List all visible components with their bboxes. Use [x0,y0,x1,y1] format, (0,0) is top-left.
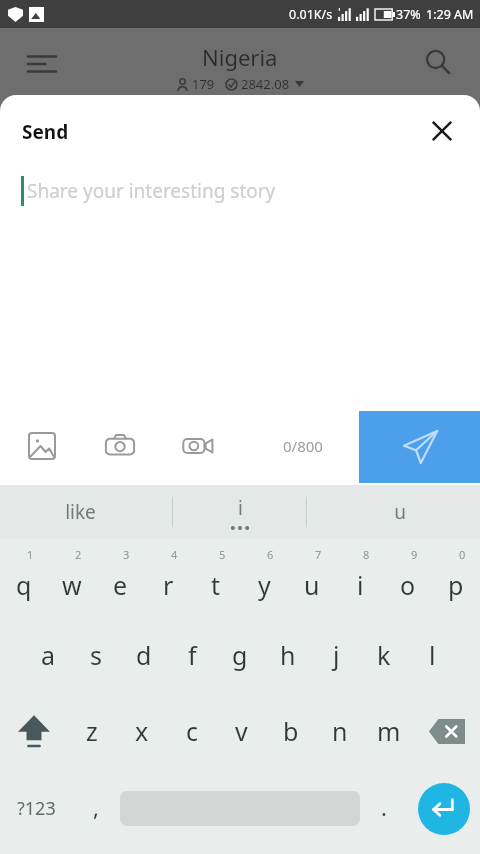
staticText: 7 [315,547,322,562]
staticText: g [232,638,248,672]
button[interactable]: 4 [144,539,192,617]
button[interactable]: Backspace [413,693,480,769]
button[interactable]: l [408,617,456,693]
staticText: j [333,638,340,672]
button[interactable]: 7 [288,539,336,617]
button[interactable]: 1 [0,539,48,617]
staticText: 8 [363,547,370,562]
staticText: 5 [219,547,226,562]
staticText: i [238,495,243,521]
staticText: 9 [411,547,418,562]
staticText: w [62,568,82,602]
staticText: u [394,499,406,525]
button[interactable]: k [360,617,408,693]
staticText: like [65,499,96,525]
button[interactable]: Shift [0,693,67,769]
staticText: a [41,638,56,672]
button[interactable]: v [217,693,266,769]
button[interactable]: b [266,693,315,769]
staticText: n [332,714,348,748]
button[interactable]: i [160,485,320,539]
staticText: 2 [75,547,82,562]
staticText: 179 [192,75,215,93]
staticText: i [357,568,364,602]
staticText: c [186,714,199,748]
button[interactable]: s [72,617,120,693]
button[interactable]: g [216,617,264,693]
button[interactable]: 3 [96,539,144,617]
button[interactable]: 6 [240,539,288,617]
button[interactable]: x [117,693,167,769]
button[interactable]: d [120,617,168,693]
button[interactable]: z [67,693,117,769]
button[interactable]: Menu [20,42,64,86]
staticText: k [377,638,391,672]
button[interactable]: a [24,617,72,693]
button[interactable]: Space [120,769,360,848]
staticText: p [448,568,464,602]
staticText: q [16,568,32,602]
button[interactable]: Search [416,40,460,84]
staticText: s [90,638,102,672]
button[interactable]: f [168,617,216,693]
staticText: m [377,714,401,748]
button[interactable]: 5 [192,539,240,617]
button[interactable]: 8 [336,539,384,617]
button[interactable]: 9 [384,539,432,617]
button[interactable]: Send [359,411,480,483]
button[interactable]: Record video [174,422,222,470]
staticText: 0 [459,547,466,562]
staticText: 2842.08 [241,75,290,93]
button[interactable]: ?123 [0,769,72,848]
staticText: x [135,714,149,748]
staticText: 3 [123,547,130,562]
staticText: f [188,638,197,672]
button[interactable]: . [360,769,408,848]
staticText: v [235,714,248,748]
staticText: z [86,714,98,748]
staticText: . [381,792,387,822]
button[interactable]: like [0,485,160,539]
button[interactable]: Enter [408,769,480,848]
staticText: e [113,568,128,602]
staticText: u [304,568,320,602]
button[interactable]: m [364,693,413,769]
staticText: y [258,568,271,602]
button[interactable]: , [72,769,120,848]
staticText: h [280,638,296,672]
button[interactable]: 2 [48,539,96,617]
staticText: Nigeria [202,42,278,72]
staticText: l [429,638,436,672]
staticText: 0/800 [283,436,323,456]
button[interactable]: Take photo [96,422,144,470]
button[interactable]: 0 [432,539,480,617]
staticText: 1 [27,547,34,562]
button[interactable]: Add image [18,422,66,470]
staticText: Send [22,119,69,145]
staticText: 6 [267,547,274,562]
button[interactable]: u [320,485,480,539]
button[interactable]: h [264,617,312,693]
staticText: , [93,792,99,822]
staticText: 0.01K/s [289,6,333,23]
staticText: 4 [171,547,178,562]
staticText: r [163,568,174,602]
staticText: Share your interesting story [27,178,276,204]
staticText: d [136,638,152,672]
button[interactable]: Close [420,109,464,153]
staticText: t [211,568,221,602]
button[interactable]: c [167,693,217,769]
staticText: 37% [396,6,421,23]
staticText: o [400,568,416,602]
button[interactable]: n [315,693,364,769]
staticText: 1:29 AM [426,6,474,23]
button[interactable]: j [312,617,360,693]
staticText: b [283,714,299,748]
button[interactable]: Share your interesting story [21,171,480,211]
staticText: ?123 [17,796,56,821]
